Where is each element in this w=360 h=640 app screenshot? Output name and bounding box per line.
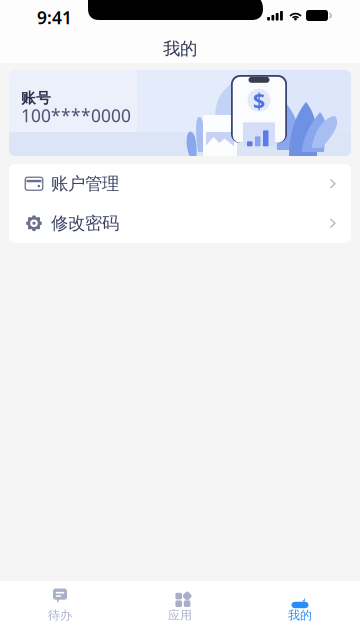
staticText: 我的: [163, 38, 197, 59]
staticText: 应用: [168, 608, 192, 623]
staticText: 我的: [288, 608, 312, 623]
staticText: 待办: [48, 608, 72, 623]
staticText: $: [253, 86, 265, 114]
staticText: 9:41: [37, 6, 72, 29]
button[interactable]: 账户管理: [9, 164, 351, 203]
staticText: 账户管理: [51, 173, 119, 194]
button[interactable]: 应用: [120, 581, 240, 640]
staticText: 账号: [21, 89, 51, 107]
button[interactable]: 我的: [240, 581, 360, 640]
button[interactable]: 待办: [0, 581, 120, 640]
staticText: 修改密码: [51, 213, 119, 234]
staticText: 100****0000: [21, 104, 131, 127]
button[interactable]: 修改密码: [9, 203, 351, 243]
